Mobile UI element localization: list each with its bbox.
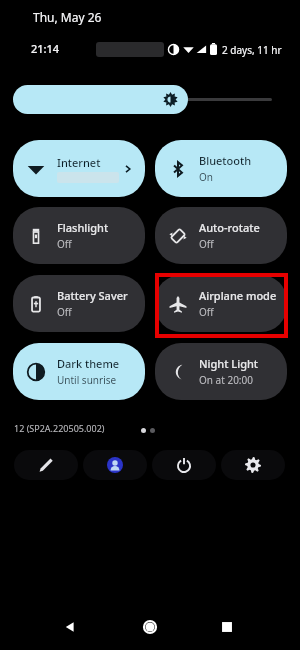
staticText: On at 20:00 [199, 373, 253, 387]
button[interactable]: Brightness [13, 85, 272, 114]
button[interactable]: Internet [13, 140, 145, 197]
button[interactable]: Back [55, 612, 85, 642]
staticText: Internet [57, 155, 101, 170]
staticText: Airplane mode [199, 288, 277, 303]
button[interactable]: Settings [221, 450, 285, 480]
staticText: Battery Saver [57, 288, 128, 303]
button[interactable]: Airplane mode [155, 275, 287, 332]
button[interactable]: Power [152, 450, 216, 480]
staticText: 12 (SP2A.220505.002) [14, 422, 105, 434]
staticText: Off [199, 305, 214, 319]
staticText: 2 days, 11 hr [222, 43, 282, 57]
staticText: Night Light [199, 356, 259, 371]
staticText: 21:14 [31, 41, 60, 56]
staticText: Thu, May 26 [33, 9, 102, 25]
button[interactable]: Recents [212, 612, 242, 642]
staticText: Auto-rotate [199, 220, 260, 235]
staticText: Off [57, 305, 72, 319]
button[interactable]: Edit tiles [14, 450, 78, 480]
button[interactable]: Battery Saver [13, 275, 145, 332]
staticText: Off [57, 237, 72, 251]
staticText: Bluetooth [199, 153, 252, 168]
staticText: On [199, 170, 213, 184]
button[interactable]: Dark theme [13, 343, 145, 400]
button[interactable]: Auto-rotate [155, 207, 287, 264]
button[interactable]: Home [135, 612, 165, 642]
button[interactable]: Flashlight [13, 207, 145, 264]
staticText: Flashlight [57, 220, 109, 235]
button[interactable]: Bluetooth [155, 140, 287, 197]
button[interactable]: User [83, 450, 147, 480]
button[interactable]: Night Light [155, 343, 287, 400]
staticText: Dark theme [57, 356, 120, 371]
staticText: Until sunrise [57, 373, 117, 387]
staticText: Off [199, 237, 214, 251]
